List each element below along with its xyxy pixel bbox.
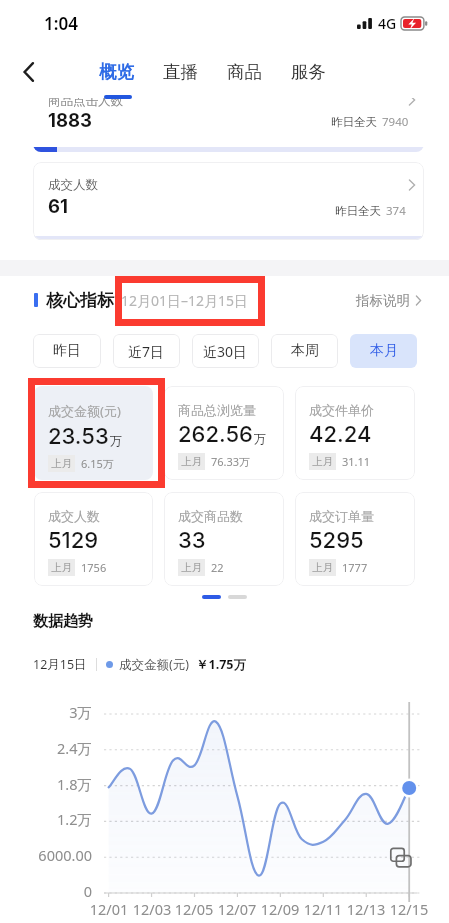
button[interactable]: 成交金额(元) — [34, 386, 153, 480]
staticText: 1.2万 — [0, 809, 92, 829]
button[interactable]: 昨日 — [33, 334, 101, 368]
button[interactable]: 近30日 — [192, 334, 259, 368]
staticText: 0 — [0, 881, 92, 901]
staticText: 概览 — [99, 61, 134, 83]
button[interactable]: 直播 — [163, 54, 198, 90]
staticText: 12/07 — [213, 899, 261, 919]
staticText: 262.56 — [178, 421, 253, 448]
staticText: 上月 — [181, 455, 202, 468]
staticText: 6.15万 — [81, 456, 114, 471]
staticText: 12月01日–12月15日 — [121, 291, 249, 310]
staticText: 1:04 — [44, 12, 78, 35]
button[interactable]: 指标说明 — [356, 292, 449, 309]
staticText: 5129 — [48, 527, 99, 554]
staticText: 2.4万 — [0, 738, 92, 758]
button[interactable]: 商品点击人数 — [33, 98, 424, 152]
staticText: 12/11 — [299, 899, 347, 919]
staticText: 12/09 — [256, 899, 304, 919]
staticText: 33 — [178, 527, 206, 554]
staticText: 1.8万 — [0, 774, 92, 794]
staticText: 上月 — [312, 561, 333, 574]
staticText: 1756 — [81, 560, 107, 575]
button[interactable]: 成交商品数 — [164, 492, 284, 586]
staticText: 万 — [110, 433, 122, 448]
staticText: 昨日全天 — [335, 204, 381, 218]
staticText: 昨日全天 — [331, 115, 377, 129]
button[interactable]: 商品 — [227, 54, 262, 90]
button[interactable]: 近7日 — [113, 334, 180, 368]
staticText: 昨日 — [53, 342, 81, 360]
button[interactable]: 本月 — [350, 334, 417, 368]
staticText: 5295 — [309, 527, 364, 554]
staticText: 成交人数 — [48, 177, 98, 193]
staticText: 上月 — [181, 561, 202, 574]
button[interactable]: 成交订单量 — [295, 492, 415, 586]
staticText: 商品点击人数 — [48, 98, 123, 109]
staticText: 核心指标 — [46, 290, 114, 311]
staticText: 7940 — [382, 114, 409, 130]
staticText: 12/03 — [128, 899, 176, 919]
staticText: 成交订单量 — [309, 508, 374, 524]
staticText: 1883 — [48, 109, 93, 131]
staticText: 1777 — [342, 560, 368, 575]
staticText: 22 — [211, 560, 224, 575]
button[interactable]: 服务 — [291, 54, 326, 90]
staticText: 直播 — [163, 61, 198, 83]
button[interactable]: 商品总浏览量 — [164, 386, 284, 480]
button[interactable]: 成交人数 — [34, 492, 153, 586]
staticText: 23.53 — [48, 423, 109, 450]
staticText: 3万 — [0, 702, 92, 722]
staticText: 本月 — [370, 342, 398, 360]
staticText: 12/15 — [385, 899, 433, 919]
staticText: 数据趋势 — [33, 612, 93, 631]
staticText: ￥1.75万 — [196, 656, 246, 673]
staticText: 商品 — [227, 61, 262, 83]
staticText: 成交金额(元) — [48, 402, 121, 420]
staticText: 服务 — [291, 61, 326, 83]
staticText: 42.24 — [309, 421, 372, 448]
staticText: 12/13 — [342, 899, 390, 919]
staticText: 商品总浏览量 — [178, 402, 256, 418]
staticText: 374 — [386, 203, 406, 219]
button[interactable]: 成交件单价 — [295, 386, 415, 480]
staticText: 上月 — [51, 561, 72, 574]
staticText: 上月 — [312, 455, 333, 468]
button[interactable]: 概览 — [99, 54, 134, 90]
button[interactable]: Back — [9, 52, 49, 92]
button[interactable]: 成交人数 — [33, 162, 424, 240]
button[interactable]: 本周 — [271, 334, 338, 368]
button[interactable]: 12月01日–12月15日 — [121, 291, 249, 310]
staticText: 31.11 — [342, 454, 371, 469]
staticText: 上月 — [51, 457, 72, 470]
staticText: 成交金额(元) — [119, 656, 190, 673]
staticText: 76.33万 — [211, 454, 251, 469]
staticText: 61 — [48, 195, 68, 217]
staticText: 成交件单价 — [309, 402, 374, 418]
staticText: 成交人数 — [48, 508, 100, 524]
staticText: 近7日 — [128, 342, 165, 361]
staticText: 4G — [378, 14, 397, 33]
staticText: 本周 — [291, 342, 319, 360]
staticText: 近30日 — [203, 342, 248, 361]
staticText: 万 — [254, 431, 266, 446]
staticText: 指标说明 — [356, 292, 410, 309]
staticText: 成交商品数 — [178, 508, 243, 524]
staticText: 12月15日 — [33, 656, 87, 673]
button[interactable]: Compare data — [388, 845, 416, 873]
staticText: 6000.00 — [0, 845, 92, 865]
staticText: 12/05 — [170, 899, 218, 919]
staticText: 12/01 — [85, 899, 133, 919]
